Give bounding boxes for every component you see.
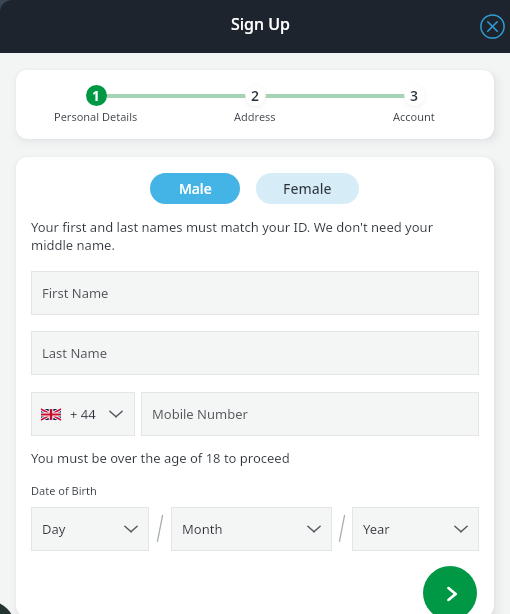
staticText: Mobile Number <box>152 405 248 423</box>
button[interactable]: Close <box>474 7 510 43</box>
button[interactable]: Country code <box>31 392 135 436</box>
button[interactable]: Mobile Number <box>141 392 479 436</box>
button[interactable]: Last Name <box>31 331 479 375</box>
button[interactable]: Male <box>150 173 240 204</box>
button[interactable]: Month <box>171 507 332 551</box>
staticText: First Name <box>42 284 109 302</box>
staticText: You must be over the age of 18 to procee… <box>31 449 290 467</box>
staticText: Personal Details <box>54 109 138 124</box>
staticText: Day <box>42 520 66 538</box>
button[interactable]: Day <box>31 507 149 551</box>
button[interactable]: Female <box>256 173 359 204</box>
staticText: 3 <box>410 86 419 105</box>
staticText: Last Name <box>42 344 108 362</box>
staticText: + 44 <box>70 405 96 423</box>
staticText: Female <box>283 179 332 198</box>
staticText: Male <box>179 179 212 198</box>
button[interactable]: Next <box>423 566 477 614</box>
staticText: 2 <box>251 86 260 105</box>
button[interactable]: First Name <box>31 271 479 315</box>
staticText: Date of Birth <box>31 483 97 498</box>
staticText: Address <box>234 109 276 124</box>
button[interactable]: Year <box>352 507 479 551</box>
staticText: 1 <box>92 86 101 105</box>
staticText: Your first and last names must match you… <box>31 218 443 254</box>
staticText: Account <box>393 109 435 124</box>
staticText: Sign Up <box>231 13 290 35</box>
staticText: Year <box>363 520 390 538</box>
staticText: Month <box>182 520 223 538</box>
